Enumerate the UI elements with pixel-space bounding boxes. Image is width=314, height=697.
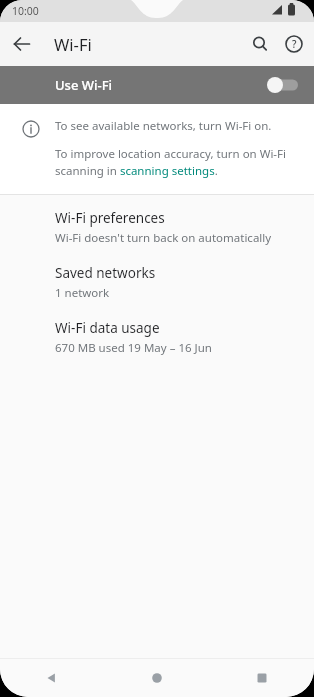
staticText: 670 MB used 19 May – 16 Jun [55,340,212,356]
button[interactable]: Recent apps [209,658,314,697]
button[interactable]: Wi-Fi preferences [0,209,314,246]
button[interactable]: Wi-Fi data usage [0,319,314,356]
staticText: ? [292,37,297,51]
staticText: 10:00 [12,4,39,18]
staticText: To improve location accuracy, turn on Wi… [55,146,300,178]
staticText: 1 network [55,285,110,301]
button[interactable]: Back [0,658,104,697]
staticText: Wi-Fi preferences [55,209,165,227]
button[interactable]: Use Wi-Fi [0,66,314,104]
staticText: Wi-Fi [54,33,92,55]
button[interactable]: Home [104,658,209,697]
staticText: Use Wi-Fi [55,76,113,94]
staticText: Saved networks [55,264,156,282]
button[interactable]: Help [277,27,311,61]
staticText: Wi-Fi doesn't turn back on automatically [55,230,272,246]
staticText: To see available networks, turn Wi-Fi on… [55,118,272,134]
button[interactable]: Back [6,28,38,60]
staticText: Wi-Fi data usage [55,319,160,337]
button[interactable]: Search [243,27,277,61]
button[interactable]: Saved networks [0,264,314,301]
